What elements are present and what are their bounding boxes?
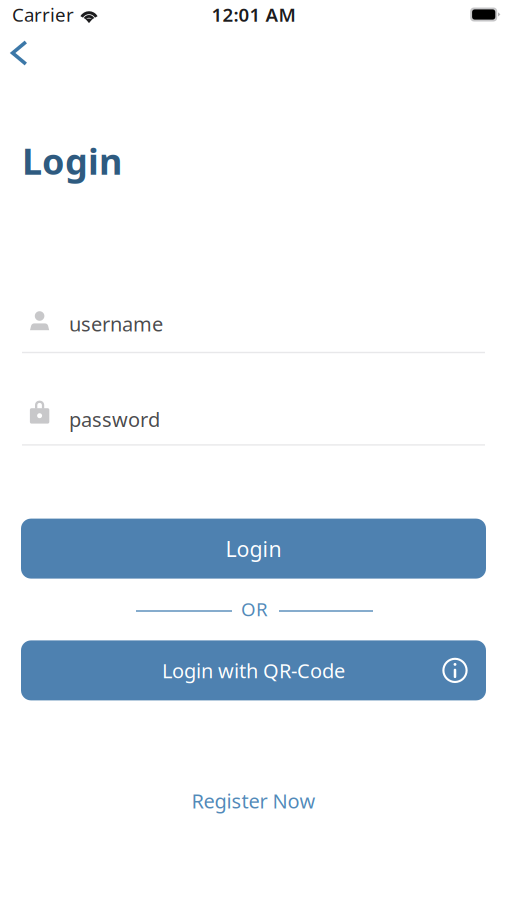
staticText: password	[69, 406, 160, 432]
staticText: 12:01 AM	[211, 2, 295, 27]
button[interactable]: Register Now	[175, 778, 331, 823]
staticText: OR	[241, 597, 268, 621]
staticText: Login with QR-Code	[162, 657, 345, 684]
staticText: Carrier	[12, 2, 74, 27]
staticText: Register Now	[191, 787, 315, 814]
button[interactable]: Back	[0, 30, 42, 74]
staticText: username	[69, 310, 163, 337]
button[interactable]: Login	[21, 519, 486, 579]
staticText: Login	[225, 534, 281, 563]
button[interactable]: Login with QR-Code	[21, 640, 486, 700]
staticText: Login	[22, 137, 122, 185]
